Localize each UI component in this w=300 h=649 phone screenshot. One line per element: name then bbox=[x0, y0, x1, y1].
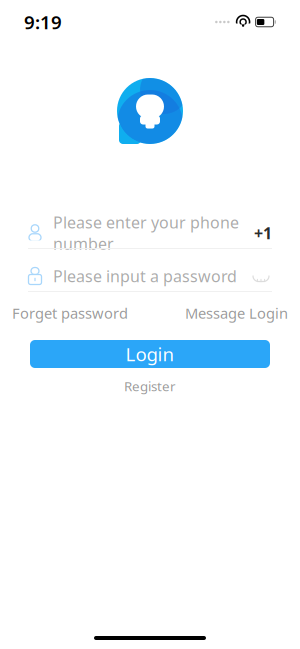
staticText: +1 bbox=[254, 222, 272, 244]
button[interactable]: Forget password bbox=[12, 303, 128, 323]
staticText: Register bbox=[124, 377, 176, 395]
button[interactable]: Show password bbox=[250, 267, 272, 285]
staticText: Login bbox=[125, 342, 174, 366]
staticText: Please input a password bbox=[53, 265, 237, 287]
button[interactable]: Message Login bbox=[185, 303, 288, 323]
button[interactable]: Register bbox=[124, 378, 176, 394]
staticText: Forget password bbox=[12, 303, 128, 323]
staticText: Message Login bbox=[185, 303, 288, 323]
button[interactable]: Login bbox=[30, 340, 270, 368]
staticText: 9:19 bbox=[24, 10, 62, 34]
staticText: Please enter your phone number bbox=[53, 212, 239, 254]
